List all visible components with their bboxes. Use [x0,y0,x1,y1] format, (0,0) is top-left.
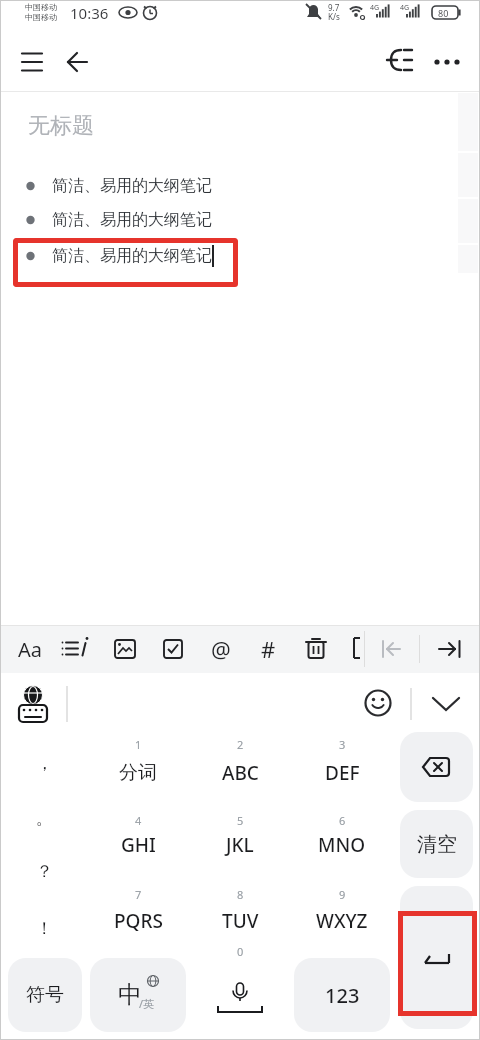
button[interactable]: WXYZ [294,901,390,941]
staticText: 4G [400,3,410,13]
button[interactable]: TUV [192,901,288,941]
button[interactable] [296,629,336,669]
staticText: ， [36,753,53,774]
button[interactable]: 简洁、易用的大纲笔记 [52,208,212,232]
button[interactable] [400,732,473,802]
button[interactable]: 123 [294,958,390,1032]
button[interactable] [425,38,469,82]
staticText: 9.7 [328,2,340,13]
staticText: WXYZ [316,908,368,934]
button[interactable]: ABC [192,753,288,793]
button[interactable]: ！ [14,911,74,945]
staticText: JKL [226,832,254,858]
staticText: 简洁、易用的大纲笔记 [52,210,212,230]
staticText: Aa [18,636,42,663]
staticText: # [261,634,276,664]
staticText: 中国移动 [25,2,57,12]
staticText: 分词 [119,761,157,785]
staticText: 123 [325,982,360,1009]
button[interactable]: ？ [14,854,74,888]
button[interactable]: 简洁、易用的大纲笔记 [52,244,212,268]
button[interactable]: # [248,629,288,669]
staticText: 4G [370,3,380,13]
button[interactable]: DEF [294,753,390,793]
button[interactable] [431,629,471,669]
button[interactable] [356,681,400,725]
staticText: 4 [135,813,142,827]
staticText: ABC [222,760,259,786]
staticText: 中 [118,980,142,1010]
button[interactable] [192,958,288,1032]
staticText: 5 [237,813,244,827]
button[interactable]: 分词 [90,753,186,793]
staticText: 简洁、易用的大纲笔记 [52,246,212,266]
staticText: 9 [339,887,346,901]
staticText: 中国移动 [25,12,57,22]
button[interactable] [424,681,468,725]
staticText: MNO [318,832,366,858]
staticText: TUV [222,908,259,934]
staticText: 8 [237,887,244,901]
staticText: /英 [139,996,155,1011]
staticText: ！ [36,918,53,939]
staticText: ？ [36,861,53,882]
button[interactable]: @ [201,629,241,669]
button[interactable]: Aa [10,629,50,669]
button[interactable] [56,42,100,86]
staticText: 0 [237,944,244,958]
staticText: 3 [339,737,346,751]
staticText: 2 [237,737,244,751]
staticText: 80 [438,7,449,19]
button[interactable] [153,629,193,669]
button[interactable] [379,38,423,82]
staticText: 。 [36,808,53,829]
button[interactable]: GHI [90,825,186,865]
button[interactable] [372,629,410,667]
button[interactable]: 清空 [400,810,473,878]
staticText: 无标题 [28,112,94,140]
staticText: 清空 [417,832,457,857]
button[interactable]: 符号 [8,958,82,1032]
button[interactable]: JKL [192,825,288,865]
staticText: DEF [325,760,360,786]
staticText: K/s [328,11,340,22]
button[interactable]: MNO [294,825,390,865]
button[interactable] [57,629,97,669]
button[interactable]: 简洁、易用的大纲笔记 [52,174,212,198]
staticText: 10:36 [70,3,109,23]
button[interactable] [12,679,56,723]
button[interactable] [105,629,145,669]
button[interactable]: ， [14,746,74,780]
button[interactable]: 中 [90,958,186,1032]
staticText: 简洁、易用的大纲笔记 [52,176,212,196]
staticText: GHI [121,832,156,858]
staticText: 6 [339,813,346,827]
staticText: @ [211,634,231,664]
staticText: PQRS [114,908,163,934]
staticText: 符号 [26,983,64,1007]
staticText: 1 [135,737,142,751]
button[interactable]: 。 [14,801,74,835]
button[interactable] [400,886,473,1029]
button[interactable]: PQRS [90,901,186,941]
staticText: 7 [135,887,142,901]
button[interactable] [12,42,56,86]
